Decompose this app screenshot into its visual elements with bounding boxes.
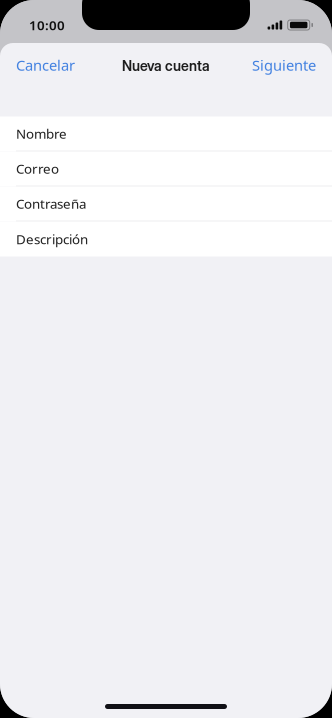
button[interactable]: Correo <box>0 151 332 186</box>
button[interactable]: Siguiente <box>236 43 332 87</box>
button[interactable]: Contraseña <box>0 186 332 221</box>
staticText: Cancelar <box>16 55 75 75</box>
staticText: Nombre <box>16 125 67 142</box>
button[interactable]: Descripción <box>0 221 332 256</box>
button[interactable]: Cancelar <box>0 43 91 87</box>
staticText: Nueva cuenta <box>122 57 210 74</box>
staticText: Correo <box>16 160 59 177</box>
staticText: Descripción <box>16 230 88 248</box>
staticText: Siguiente <box>252 55 316 75</box>
button[interactable]: Nombre <box>0 116 332 151</box>
staticText: 10:00 <box>29 16 65 34</box>
staticText: Contraseña <box>16 195 86 212</box>
